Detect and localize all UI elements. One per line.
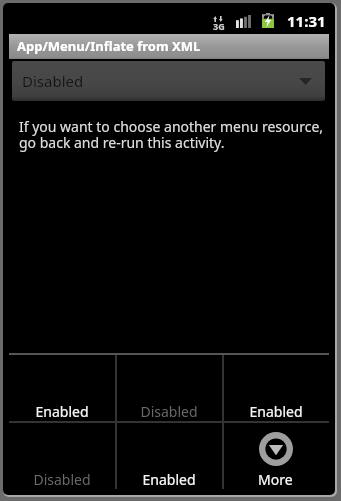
staticText: Enabled	[249, 402, 303, 421]
staticText: App/Menu/Inflate from XML	[17, 37, 201, 55]
staticText: Disabled	[22, 71, 84, 91]
button[interactable]: Enabled	[222, 353, 329, 421]
staticText: Disabled	[33, 470, 91, 489]
button[interactable]: Disabled	[115, 353, 222, 421]
staticText: 3G	[213, 20, 225, 32]
staticText: If you want to choose another menu resou…	[19, 117, 324, 152]
button[interactable]: Disabled	[12, 61, 325, 101]
staticText: Enabled	[142, 470, 196, 489]
button[interactable]: Enabled	[9, 353, 115, 421]
button[interactable]: Disabled	[9, 421, 115, 489]
staticText: Disabled	[140, 402, 198, 421]
staticText: Enabled	[35, 402, 89, 421]
button[interactable]: More options	[222, 421, 329, 489]
staticText: 11:31	[287, 11, 326, 31]
staticText: More	[258, 470, 293, 489]
button[interactable]: Enabled	[115, 421, 222, 489]
